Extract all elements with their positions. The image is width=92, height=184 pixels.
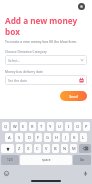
button[interactable]: G [44, 133, 51, 142]
button[interactable]: Emoji [3, 170, 10, 177]
button[interactable]: Profile [78, 3, 85, 10]
button[interactable]: T [38, 122, 45, 131]
staticText: Send [69, 94, 78, 99]
staticText: Y [49, 124, 52, 129]
button[interactable]: L [80, 133, 87, 142]
staticText: E [22, 124, 25, 129]
button[interactable]: U [56, 122, 63, 131]
staticText: U [58, 124, 61, 129]
staticText: To create a new money box fill the blow … [5, 39, 78, 44]
staticText: J [65, 135, 67, 140]
staticText: N [63, 146, 67, 151]
staticText: Add a new money box [5, 15, 87, 37]
staticText: B [54, 146, 57, 151]
staticText: X [27, 146, 30, 151]
staticText: A [8, 135, 11, 140]
staticText: Money box delivery date [5, 69, 43, 73]
button[interactable]: Backspace [79, 144, 91, 153]
staticText: S [18, 135, 21, 140]
button[interactable]: 123 [1, 155, 19, 165]
staticText: T [40, 124, 43, 129]
staticText: D [28, 135, 31, 140]
button[interactable]: C [34, 144, 41, 153]
button[interactable]: Z [16, 144, 23, 153]
button[interactable]: H [53, 133, 60, 142]
staticText: Select... [8, 58, 80, 63]
staticText: Z [18, 146, 21, 151]
button[interactable]: J [62, 133, 69, 142]
staticText: G [46, 135, 49, 140]
button[interactable]: Send [60, 91, 87, 101]
staticText: W [13, 124, 17, 129]
button[interactable]: O [74, 122, 81, 131]
button[interactable]: Shift [1, 144, 14, 153]
button[interactable]: space [20, 155, 72, 165]
staticText: V [45, 146, 48, 151]
button[interactable]: Q [2, 122, 9, 131]
button[interactable]: N [61, 144, 68, 153]
staticText: R [31, 124, 34, 129]
button[interactable]: V [43, 144, 50, 153]
staticText: L [82, 135, 85, 140]
button[interactable]: X [25, 144, 32, 153]
staticText: Set the date [8, 78, 79, 83]
button[interactable]: Go [73, 155, 91, 165]
button[interactable]: E [20, 122, 27, 131]
staticText: K [73, 135, 76, 140]
button[interactable]: B [52, 144, 59, 153]
staticText: H [55, 135, 58, 140]
button[interactable]: P [83, 122, 90, 131]
button[interactable]: I [65, 122, 72, 131]
button[interactable]: M [70, 144, 77, 153]
button[interactable]: R [29, 122, 36, 131]
staticText: P [85, 124, 88, 129]
staticText: O [76, 124, 80, 129]
button[interactable]: Set the date [5, 75, 87, 85]
button[interactable]: S [15, 133, 23, 142]
staticText: M [72, 146, 76, 151]
button[interactable]: D [25, 133, 33, 142]
button[interactable]: F [35, 133, 42, 142]
staticText: 123 [7, 158, 13, 162]
button[interactable]: A [5, 133, 13, 142]
button[interactable]: Voice input [82, 170, 89, 177]
staticText: Q [4, 124, 8, 129]
staticText: C [36, 146, 39, 151]
button[interactable]: Select... [5, 55, 87, 65]
staticText: F [37, 135, 40, 140]
staticText: space [42, 158, 51, 162]
staticText: Choose Donation Category [5, 49, 47, 53]
staticText: I [68, 124, 70, 129]
button[interactable]: W [11, 122, 18, 131]
button[interactable]: Y [47, 122, 54, 131]
staticText: Go [80, 158, 85, 162]
button[interactable]: K [71, 133, 78, 142]
